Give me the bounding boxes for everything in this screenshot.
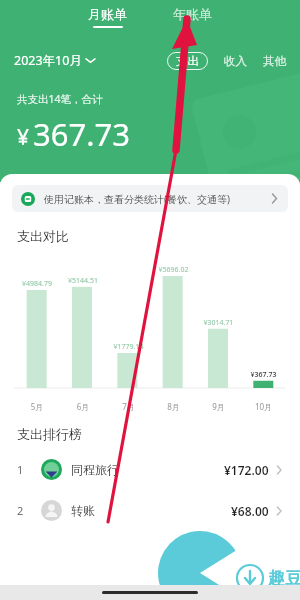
staticText: ¥5696.02 bbox=[151, 265, 196, 275]
staticText: 367.73 bbox=[33, 113, 130, 155]
staticText: ¥3014.71 bbox=[196, 318, 241, 328]
staticText: 其他 bbox=[263, 54, 286, 68]
button[interactable]: 收入 bbox=[224, 51, 247, 71]
staticText: 5月 bbox=[14, 401, 60, 412]
staticText: 收入 bbox=[224, 54, 247, 68]
staticText: 转账 bbox=[71, 503, 95, 518]
staticText: 2 bbox=[17, 503, 35, 518]
button[interactable]: 使用记账本，查看分类统计(餐饮、交通等) bbox=[12, 185, 288, 212]
button[interactable]: 1 bbox=[0, 456, 300, 483]
staticText: 10月 bbox=[241, 401, 286, 412]
staticText: ¥1779.14 bbox=[106, 342, 151, 352]
staticText: 2023年10月 bbox=[14, 52, 82, 69]
staticText: 支出排行榜 bbox=[17, 426, 82, 442]
staticText: 使用记账本，查看分类统计(餐饮、交通等) bbox=[44, 192, 230, 206]
button[interactable]: 支出 bbox=[167, 52, 208, 70]
staticText: 6月 bbox=[60, 401, 106, 412]
staticText: 同程旅行 bbox=[71, 462, 119, 477]
staticText: 年账单 bbox=[173, 6, 212, 22]
staticText: ¥68.00 bbox=[231, 503, 269, 519]
button[interactable]: 其他 bbox=[263, 51, 286, 71]
staticText: 支出对比 bbox=[17, 228, 69, 244]
staticText: ¥5144.51 bbox=[60, 276, 106, 286]
staticText: 1 bbox=[17, 462, 35, 477]
staticText: 月账单 bbox=[88, 6, 127, 22]
staticText: 支出 bbox=[176, 54, 199, 68]
staticText: ¥172.00 bbox=[224, 462, 269, 478]
staticText: 7月 bbox=[106, 401, 151, 412]
staticText: ¥4984.79 bbox=[14, 279, 60, 289]
staticText: 共支出14笔，合计 bbox=[17, 92, 103, 106]
staticText: 8月 bbox=[151, 401, 196, 412]
staticText: 趣豆 bbox=[268, 568, 300, 589]
staticText: ¥367.73 bbox=[241, 370, 286, 380]
button[interactable]: 2 bbox=[0, 497, 300, 524]
button[interactable]: 年账单 bbox=[163, 2, 222, 26]
staticText: 9月 bbox=[196, 401, 241, 412]
button[interactable]: 月账单 bbox=[78, 2, 137, 32]
staticText: ¥ bbox=[17, 123, 30, 152]
button[interactable]: 2023年10月 bbox=[14, 48, 95, 73]
